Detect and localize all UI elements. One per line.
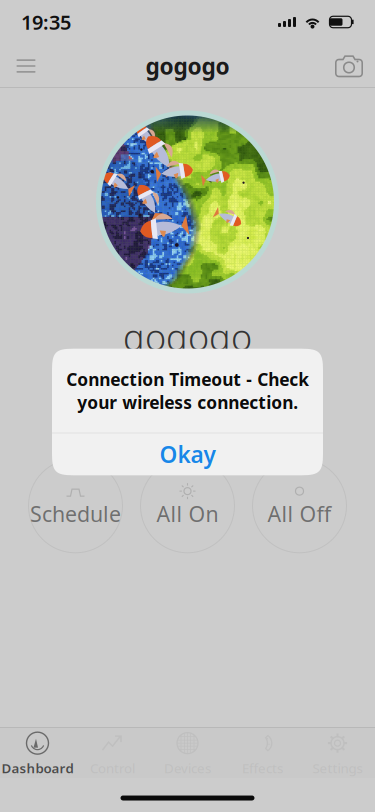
staticText: Schedule — [30, 500, 121, 528]
staticText: Okay — [159, 439, 215, 469]
staticText: gogogo — [145, 51, 229, 81]
button[interactable]: All Off — [252, 459, 346, 553]
staticText: Connection Timeout - Check your wireless… — [66, 368, 309, 414]
button[interactable]: Camera — [327, 44, 371, 88]
button[interactable]: Menu — [4, 44, 48, 88]
staticText: Dashboard — [1, 759, 73, 777]
staticText: All Off — [267, 500, 331, 528]
staticText: All On — [156, 500, 218, 528]
button[interactable]: All On — [140, 459, 234, 553]
button[interactable]: Dashboard — [0, 729, 75, 778]
button[interactable]: Schedule — [28, 459, 122, 553]
staticText: 19:35 — [21, 9, 71, 35]
staticText: gogogo — [123, 313, 252, 361]
button[interactable]: Okay — [52, 433, 323, 475]
